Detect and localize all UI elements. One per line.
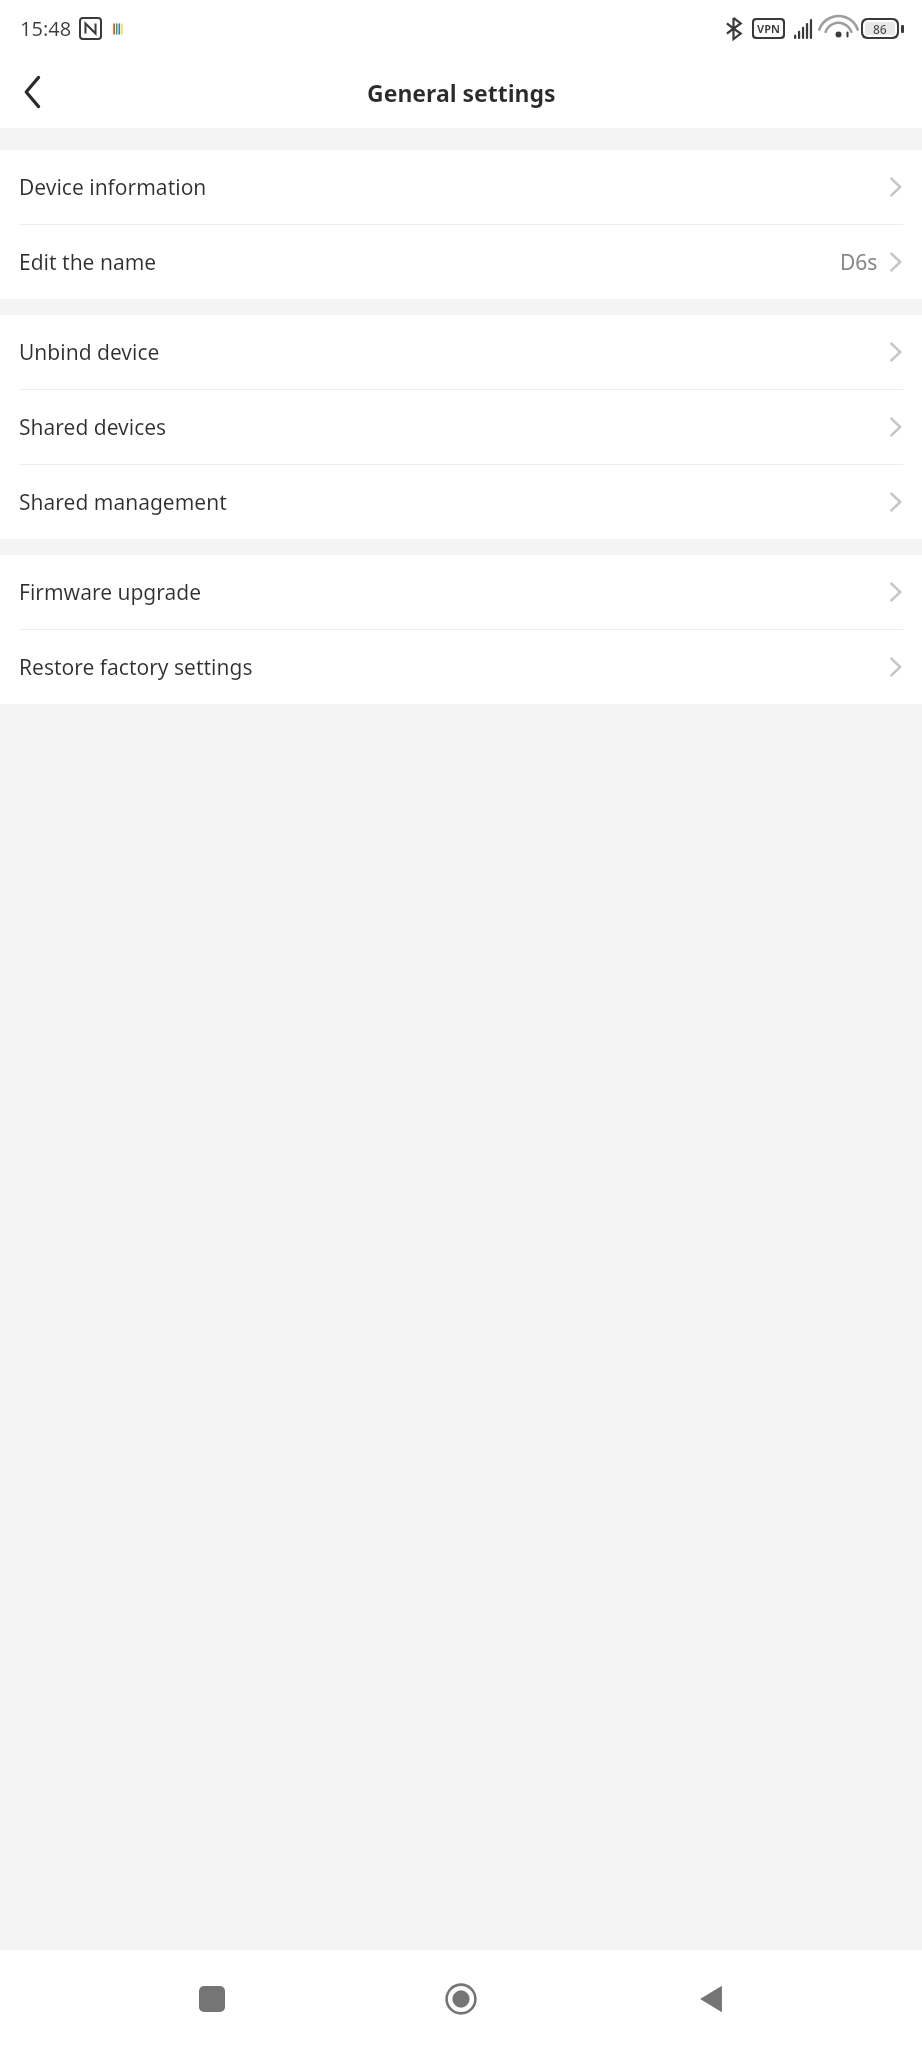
button[interactable]: Shared management [0, 465, 922, 539]
staticText: Unbind device [19, 338, 160, 367]
staticText: 15:48 [20, 15, 72, 42]
button[interactable]: Edit the name [0, 225, 922, 299]
button[interactable]: Back [6, 65, 60, 119]
button[interactable]: Firmware upgrade [0, 555, 922, 629]
button[interactable]: Unbind device [0, 315, 922, 389]
button[interactable]: Restore factory settings [0, 630, 922, 704]
button[interactable]: Back [673, 1961, 749, 2037]
button[interactable]: Device information [0, 150, 922, 224]
staticText: Edit the name [19, 248, 157, 277]
staticText: D6s [840, 248, 878, 277]
staticText: Device information [19, 173, 207, 202]
button[interactable]: Shared devices [0, 390, 922, 464]
staticText: VPN [757, 21, 780, 36]
button[interactable]: Home [423, 1961, 499, 2037]
staticText: General settings [367, 77, 556, 108]
button[interactable]: Recents [174, 1961, 250, 2037]
staticText: Shared management [19, 488, 227, 517]
staticText: Shared devices [19, 413, 167, 442]
staticText: Restore factory settings [19, 653, 253, 682]
staticText: 86 [873, 21, 887, 37]
staticText: Firmware upgrade [19, 578, 202, 607]
